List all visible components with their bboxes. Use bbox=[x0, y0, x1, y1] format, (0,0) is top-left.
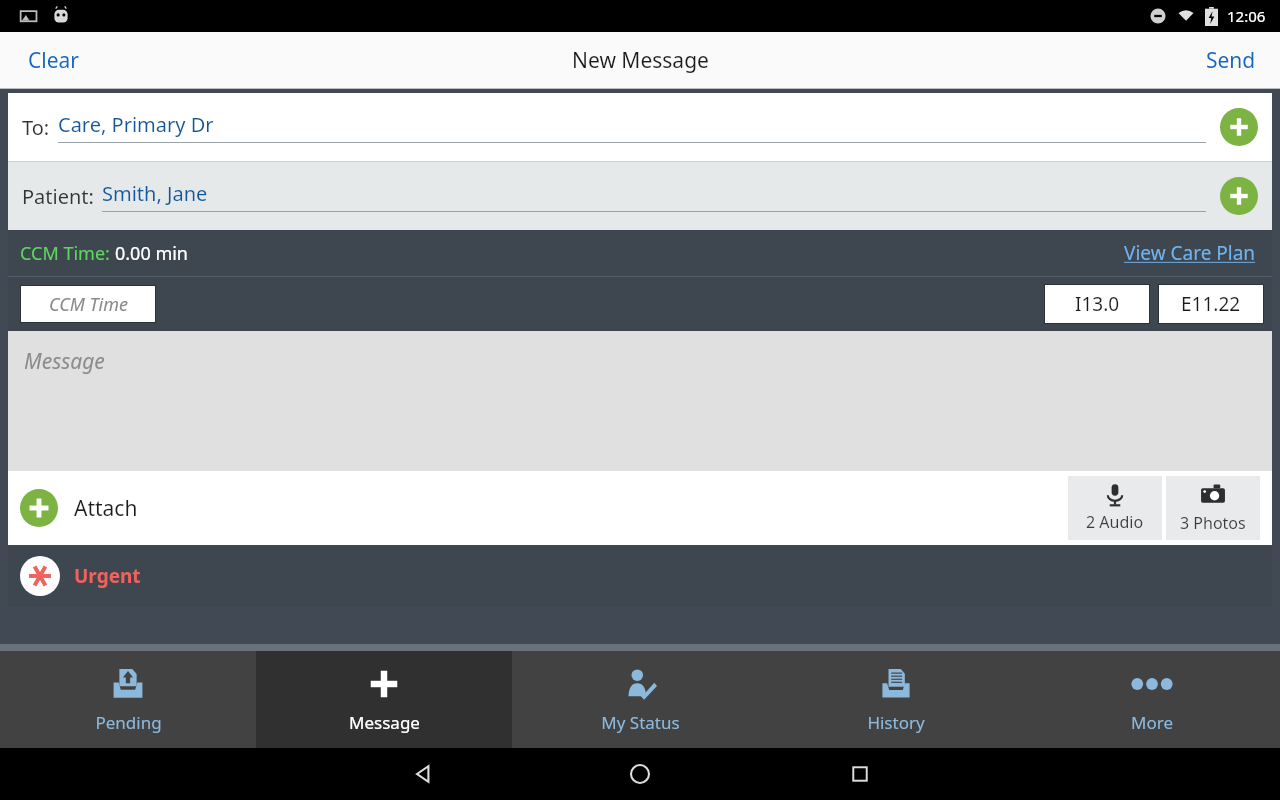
button[interactable]: Add To: bbox=[1220, 108, 1258, 146]
button[interactable]: Urgent bbox=[8, 545, 1272, 607]
staticText: Patient: bbox=[22, 183, 94, 210]
button[interactable]: Attach bbox=[8, 481, 150, 535]
staticText: Pending bbox=[95, 711, 162, 734]
button[interactable]: E11.22 bbox=[1158, 284, 1264, 324]
button[interactable]: Message bbox=[8, 331, 1272, 471]
staticText: Urgent bbox=[74, 563, 141, 589]
button[interactable]: Add Patient: bbox=[1220, 177, 1258, 215]
staticText: View Care Plan bbox=[1124, 240, 1256, 266]
button[interactable]: 3 Photos bbox=[1166, 476, 1260, 540]
button[interactable]: Recent apps bbox=[846, 760, 874, 788]
button[interactable]: I13.0 bbox=[1044, 284, 1150, 324]
button[interactable]: Pending bbox=[0, 651, 256, 748]
staticText: 3 Photos bbox=[1180, 512, 1246, 534]
staticText: 12:06 bbox=[1227, 6, 1266, 26]
button[interactable]: History bbox=[768, 651, 1024, 748]
staticText: Attach bbox=[74, 494, 138, 523]
staticText: My Status bbox=[601, 711, 680, 734]
staticText: Message bbox=[349, 711, 420, 734]
button[interactable]: Home bbox=[625, 759, 655, 789]
button[interactable]: Send bbox=[1182, 34, 1280, 87]
button[interactable]: 2 Audio bbox=[1068, 476, 1162, 540]
staticText: More bbox=[1131, 711, 1173, 734]
staticText: Message bbox=[24, 347, 105, 376]
button[interactable]: Back bbox=[408, 759, 438, 789]
button[interactable]: To: bbox=[8, 93, 1272, 161]
button[interactable]: My Status bbox=[512, 651, 768, 748]
staticText: CCM Time bbox=[49, 292, 128, 317]
staticText: New Message bbox=[572, 46, 709, 75]
button[interactable]: More bbox=[1024, 651, 1280, 748]
staticText: 0.00 min bbox=[115, 241, 188, 266]
button[interactable]: Patient: bbox=[8, 162, 1272, 230]
button[interactable]: View Care Plan bbox=[1114, 234, 1266, 272]
button[interactable]: Clear bbox=[0, 34, 107, 87]
staticText: E11.22 bbox=[1181, 291, 1241, 317]
staticText: I13.0 bbox=[1075, 291, 1120, 317]
staticText: Clear bbox=[28, 46, 79, 75]
staticText: Smith, Jane bbox=[102, 180, 208, 207]
staticText: History bbox=[867, 711, 925, 734]
staticText: 2 Audio bbox=[1086, 511, 1144, 533]
staticText: CCM Time: bbox=[20, 241, 115, 266]
staticText: To: bbox=[22, 114, 50, 141]
button[interactable]: CCM Time bbox=[20, 285, 156, 323]
staticText: Send bbox=[1206, 46, 1256, 75]
button[interactable]: Message bbox=[256, 651, 512, 748]
staticText: Care, Primary Dr bbox=[58, 111, 214, 138]
